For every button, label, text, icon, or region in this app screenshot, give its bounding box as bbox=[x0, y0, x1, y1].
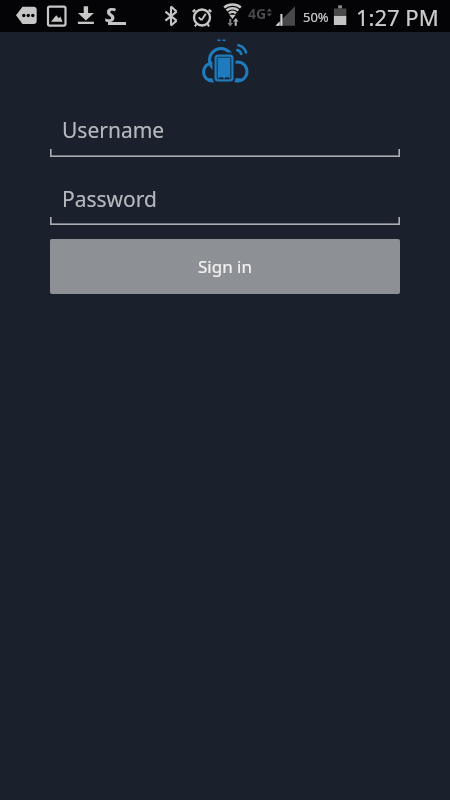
staticText: Username bbox=[62, 116, 165, 145]
button[interactable]: Sign in bbox=[50, 239, 400, 294]
button[interactable]: Password bbox=[50, 172, 400, 226]
staticText: S bbox=[105, 1, 116, 28]
staticText: 50% bbox=[303, 8, 329, 26]
staticText: 4G bbox=[248, 4, 267, 23]
staticText: Sign in bbox=[198, 255, 252, 278]
button[interactable]: Username bbox=[50, 103, 400, 157]
staticText: Password bbox=[62, 185, 157, 214]
staticText: 1:27 PM bbox=[356, 2, 439, 32]
